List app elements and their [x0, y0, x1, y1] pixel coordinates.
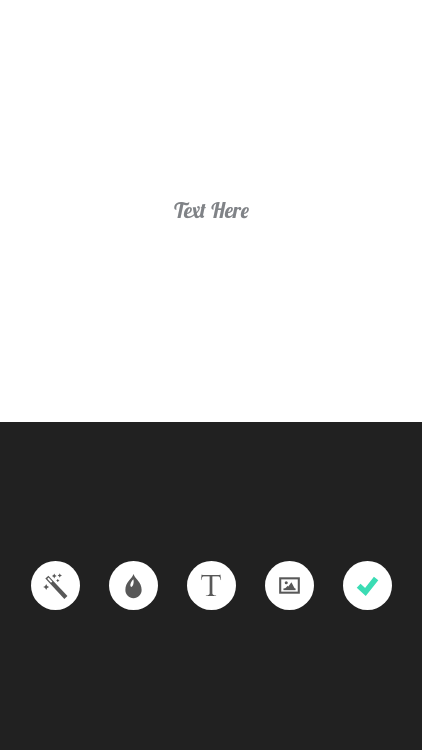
button[interactable]: Add image — [265, 561, 314, 610]
button[interactable]: Effects — [31, 561, 80, 610]
button[interactable]: Done — [343, 561, 392, 610]
button[interactable]: Photo canvas — [0, 0, 422, 422]
staticText: Text Here — [173, 197, 250, 223]
button[interactable]: Blur — [109, 561, 158, 610]
staticText: T — [200, 566, 223, 607]
button[interactable]: Add text — [187, 561, 236, 610]
